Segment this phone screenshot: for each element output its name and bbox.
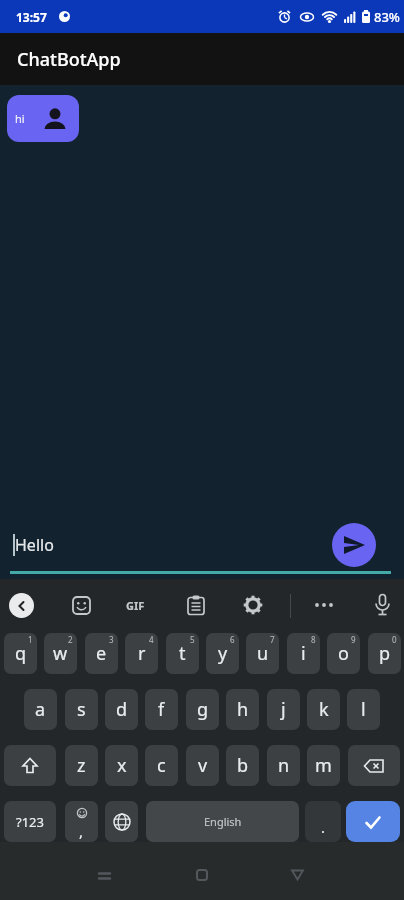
button[interactable]: w bbox=[44, 633, 77, 674]
button[interactable] bbox=[105, 801, 138, 842]
staticText: c bbox=[157, 753, 166, 778]
button[interactable]: GIF bbox=[126, 598, 145, 613]
button[interactable] bbox=[374, 594, 391, 618]
staticText: 1 bbox=[28, 634, 33, 645]
staticText: x bbox=[117, 753, 127, 778]
button[interactable]: a bbox=[24, 689, 57, 730]
button[interactable]: x bbox=[105, 745, 138, 786]
staticText: p bbox=[379, 641, 391, 666]
button[interactable]: . bbox=[305, 801, 341, 842]
button[interactable] bbox=[291, 869, 304, 881]
staticText: 2 bbox=[68, 634, 73, 645]
staticText: f bbox=[158, 697, 165, 722]
button[interactable] bbox=[72, 596, 91, 615]
staticText: j bbox=[281, 697, 286, 722]
button[interactable]: s bbox=[65, 689, 98, 730]
staticText: y bbox=[218, 641, 228, 666]
staticText: 9 bbox=[351, 634, 356, 645]
button[interactable]: b bbox=[226, 745, 259, 786]
staticText: 4 bbox=[149, 634, 154, 645]
button[interactable]: h bbox=[226, 689, 259, 730]
staticText: u bbox=[257, 641, 269, 666]
staticText: a bbox=[35, 697, 46, 722]
button[interactable]: m bbox=[307, 745, 340, 786]
button[interactable]: y bbox=[206, 633, 239, 674]
button[interactable]: Hello bbox=[0, 522, 332, 568]
button[interactable]: p bbox=[368, 633, 401, 674]
button[interactable] bbox=[4, 745, 56, 786]
staticText: , bbox=[79, 821, 84, 841]
staticText: s bbox=[77, 697, 86, 722]
staticText: 83% bbox=[374, 8, 400, 26]
staticText: i bbox=[301, 641, 306, 666]
button[interactable] bbox=[346, 801, 400, 842]
button[interactable]: z bbox=[65, 745, 98, 786]
staticText: d bbox=[116, 697, 128, 722]
staticText: g bbox=[197, 697, 209, 722]
button[interactable]: , bbox=[65, 801, 98, 842]
button[interactable]: q bbox=[4, 633, 37, 674]
button[interactable] bbox=[348, 745, 400, 786]
button[interactable] bbox=[9, 593, 34, 618]
button[interactable]: k bbox=[307, 689, 340, 730]
staticText: v bbox=[198, 753, 208, 778]
button[interactable]: i bbox=[287, 633, 320, 674]
staticText: m bbox=[315, 753, 332, 778]
staticText: 0 bbox=[392, 634, 397, 645]
button[interactable]: g bbox=[186, 689, 219, 730]
button[interactable]: t bbox=[166, 633, 199, 674]
button[interactable]: l bbox=[347, 689, 380, 730]
staticText: e bbox=[96, 641, 107, 666]
staticText: . bbox=[321, 817, 326, 837]
staticText: ?123 bbox=[16, 813, 44, 831]
button[interactable] bbox=[187, 595, 205, 616]
button[interactable]: r bbox=[125, 633, 158, 674]
button[interactable] bbox=[97, 871, 112, 881]
button[interactable]: c bbox=[145, 745, 178, 786]
staticText: 3 bbox=[109, 634, 114, 645]
staticText: 13:57 bbox=[16, 9, 47, 25]
button[interactable]: d bbox=[105, 689, 138, 730]
staticText: 5 bbox=[190, 634, 195, 645]
staticText: ChatBotApp bbox=[17, 47, 121, 72]
staticText: t bbox=[179, 641, 186, 666]
staticText: hi bbox=[15, 111, 25, 126]
button[interactable]: English bbox=[146, 801, 299, 842]
button[interactable]: j bbox=[267, 689, 300, 730]
staticText: w bbox=[53, 641, 68, 666]
staticText: r bbox=[138, 641, 146, 666]
button[interactable] bbox=[243, 595, 263, 615]
staticText: q bbox=[15, 641, 27, 666]
staticText: l bbox=[361, 697, 366, 722]
button[interactable]: o bbox=[327, 633, 360, 674]
button[interactable]: n bbox=[267, 745, 300, 786]
staticText: k bbox=[319, 697, 329, 722]
staticText: b bbox=[237, 753, 249, 778]
button[interactable] bbox=[196, 869, 208, 881]
button[interactable]: v bbox=[186, 745, 219, 786]
button[interactable]: ?123 bbox=[4, 801, 56, 842]
staticText: English bbox=[204, 814, 242, 829]
staticText: n bbox=[278, 753, 290, 778]
button[interactable]: hi bbox=[7, 95, 79, 142]
staticText: 7 bbox=[270, 634, 275, 645]
button[interactable]: u bbox=[246, 633, 279, 674]
staticText: o bbox=[338, 641, 349, 666]
button[interactable] bbox=[314, 602, 335, 608]
button[interactable]: ChatBotApp bbox=[0, 33, 404, 85]
staticText: 6 bbox=[230, 634, 235, 645]
button[interactable]: f bbox=[145, 689, 178, 730]
staticText: 8 bbox=[311, 634, 316, 645]
staticText: h bbox=[237, 697, 249, 722]
staticText: Hello bbox=[15, 534, 54, 556]
button[interactable]: e bbox=[85, 633, 118, 674]
button[interactable] bbox=[332, 523, 376, 567]
staticText: z bbox=[77, 753, 86, 778]
